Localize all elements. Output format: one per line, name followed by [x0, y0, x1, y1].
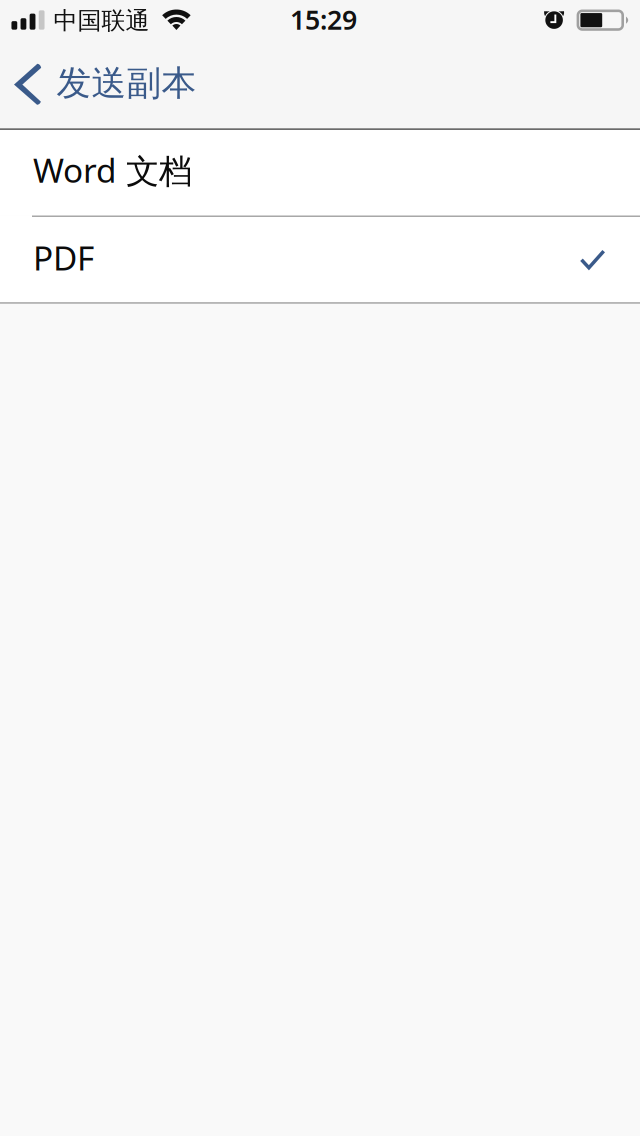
staticText: 发送副本 — [57, 62, 197, 104]
staticText: Word 文档 — [33, 148, 192, 192]
button[interactable]: PDF — [0, 217, 640, 302]
button[interactable]: Word 文档 — [0, 130, 640, 215]
button[interactable]: 返回 发送副本 — [0, 48, 213, 130]
staticText: PDF — [33, 235, 94, 280]
staticText: 中国联通 — [53, 6, 149, 35]
staticText: 15:29 — [290, 2, 357, 37]
